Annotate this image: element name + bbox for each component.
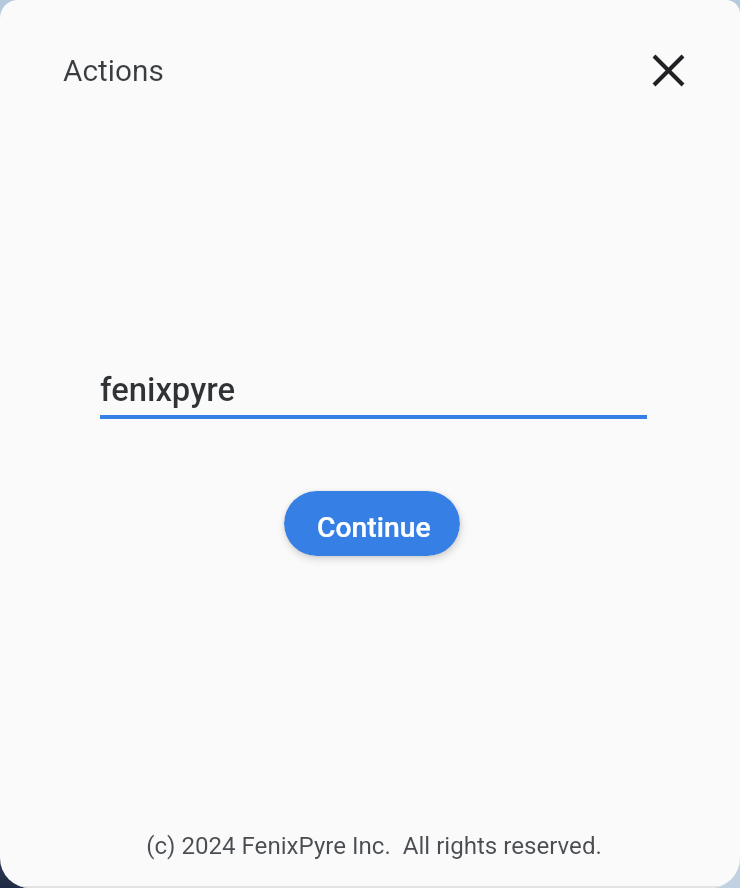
staticText: Continue [317, 511, 431, 544]
button[interactable]: Continue [284, 491, 460, 556]
staticText: (c) 2024 FenixPyre Inc. All rights reser… [146, 832, 602, 860]
staticText: Actions [63, 53, 164, 88]
staticText: fenixpyre [100, 371, 236, 409]
button[interactable]: fenixpyre [100, 371, 647, 419]
button[interactable]: Close [644, 46, 692, 94]
